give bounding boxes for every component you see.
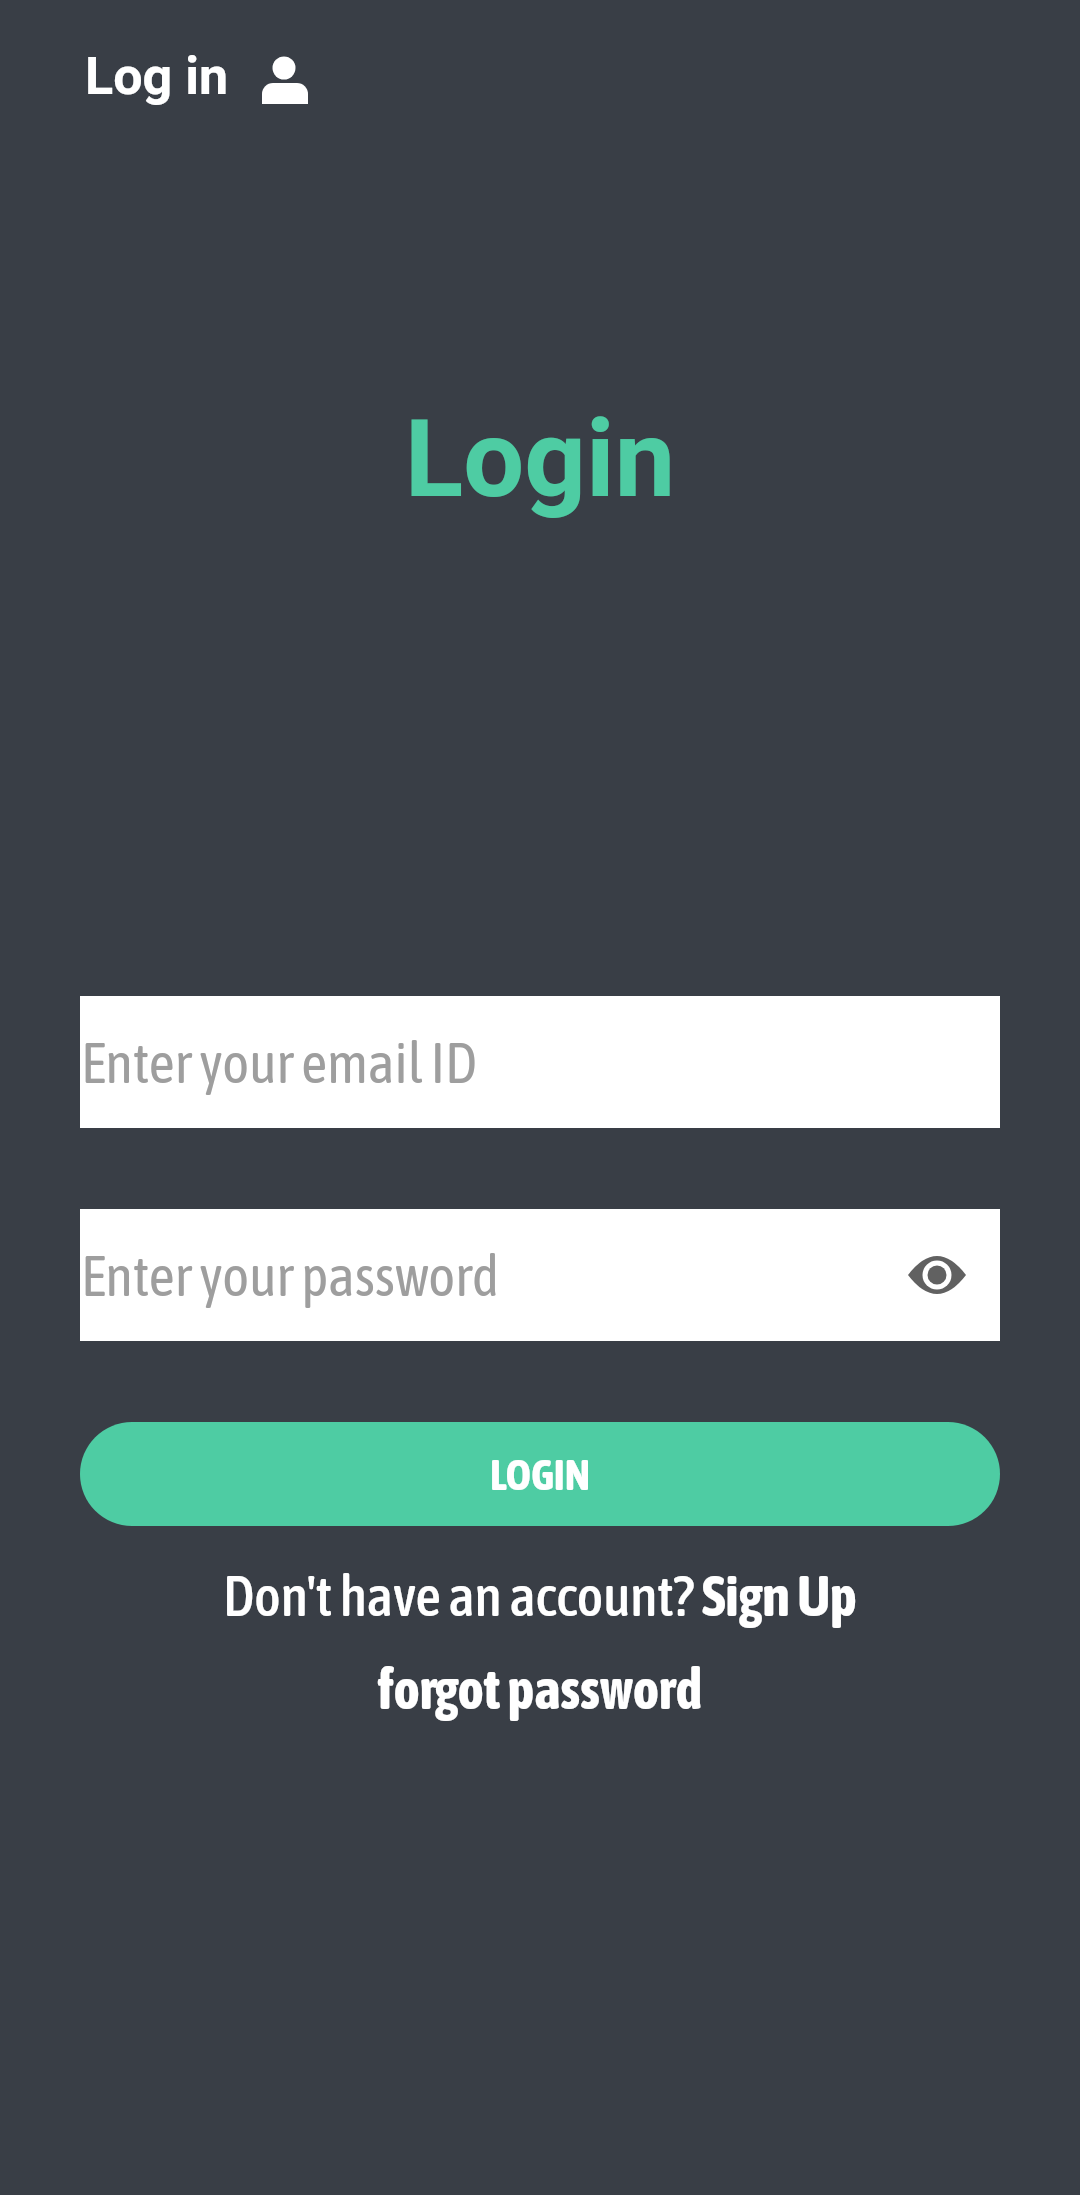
- button[interactable]: [905, 1243, 969, 1307]
- button[interactable]: Sign Up: [702, 1564, 857, 1628]
- button[interactable]: forgot password: [378, 1657, 703, 1721]
- staticText: Enter your email ID: [81, 1030, 478, 1095]
- staticText: Enter your password: [81, 1243, 499, 1308]
- button[interactable]: Enter your email ID: [80, 996, 1000, 1128]
- button[interactable]: [255, 50, 315, 108]
- button[interactable]: Enter your password: [80, 1209, 1000, 1341]
- staticText: Login: [0, 396, 1080, 523]
- staticText: LOGIN: [490, 1450, 591, 1499]
- staticText: Log in: [85, 46, 229, 107]
- button[interactable]: LOGIN: [80, 1422, 1000, 1526]
- staticText: Don't have an account?: [223, 1564, 702, 1628]
